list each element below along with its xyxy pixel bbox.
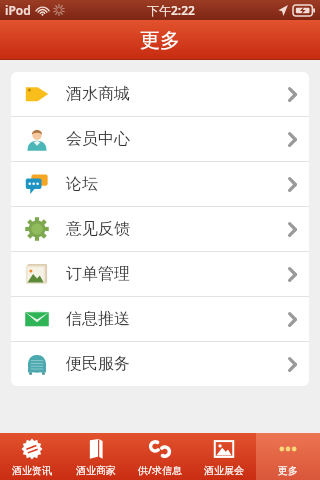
- staticText: 供/求信息: [138, 463, 182, 477]
- button[interactable]: 酒水商城: [11, 72, 309, 116]
- staticText: 更多: [278, 464, 298, 477]
- button[interactable]: 酒业商家: [64, 433, 128, 480]
- button[interactable]: 酒业展会: [192, 433, 256, 480]
- button[interactable]: 更多: [256, 433, 320, 480]
- button[interactable]: 酒业资讯: [0, 433, 64, 480]
- button[interactable]: 论坛: [11, 162, 309, 206]
- staticText: 酒业商家: [76, 464, 116, 477]
- button[interactable]: 供/求信息: [128, 433, 192, 480]
- staticText: 会员中心: [66, 129, 130, 149]
- staticText: 酒业展会: [204, 464, 244, 477]
- button[interactable]: 意见反馈: [11, 207, 309, 251]
- button[interactable]: 会员中心: [11, 117, 309, 161]
- button[interactable]: 信息推送: [11, 297, 309, 341]
- button[interactable]: 便民服务: [11, 342, 309, 386]
- staticText: 信息推送: [66, 309, 130, 329]
- staticText: 更多: [140, 28, 180, 53]
- staticText: 订单管理: [66, 264, 130, 284]
- staticText: 酒业资讯: [12, 464, 52, 477]
- button[interactable]: 订单管理: [11, 252, 309, 296]
- staticText: 酒水商城: [66, 84, 130, 104]
- staticText: 意见反馈: [66, 219, 130, 239]
- staticText: 下午2:22: [147, 2, 195, 18]
- staticText: 论坛: [66, 174, 98, 194]
- staticText: 便民服务: [66, 354, 130, 374]
- staticText: iPod: [5, 2, 31, 18]
